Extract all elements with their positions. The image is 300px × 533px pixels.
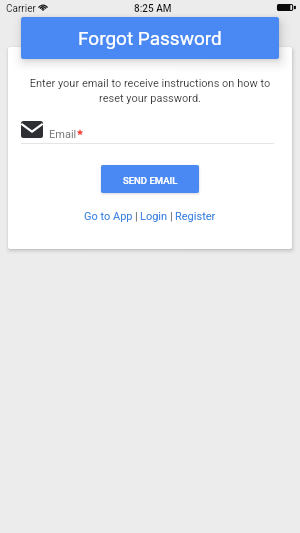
staticText: | xyxy=(170,210,173,223)
button[interactable]: Email xyxy=(21,117,274,141)
button[interactable]: Login xyxy=(140,210,168,223)
staticText: Forgot Password xyxy=(78,27,222,49)
staticText: Carrier xyxy=(6,3,36,15)
staticText: Email xyxy=(49,128,77,141)
staticText: Enter your email to receive instructions… xyxy=(18,77,282,105)
other: Email xyxy=(21,121,43,138)
button[interactable]: Register xyxy=(175,210,216,223)
staticText: | xyxy=(135,210,138,223)
button[interactable]: Go to App xyxy=(84,210,133,223)
button[interactable]: SEND EMAIL xyxy=(101,165,199,193)
staticText: SEND EMAIL xyxy=(123,175,178,186)
staticText: 8:25 AM xyxy=(134,3,172,15)
